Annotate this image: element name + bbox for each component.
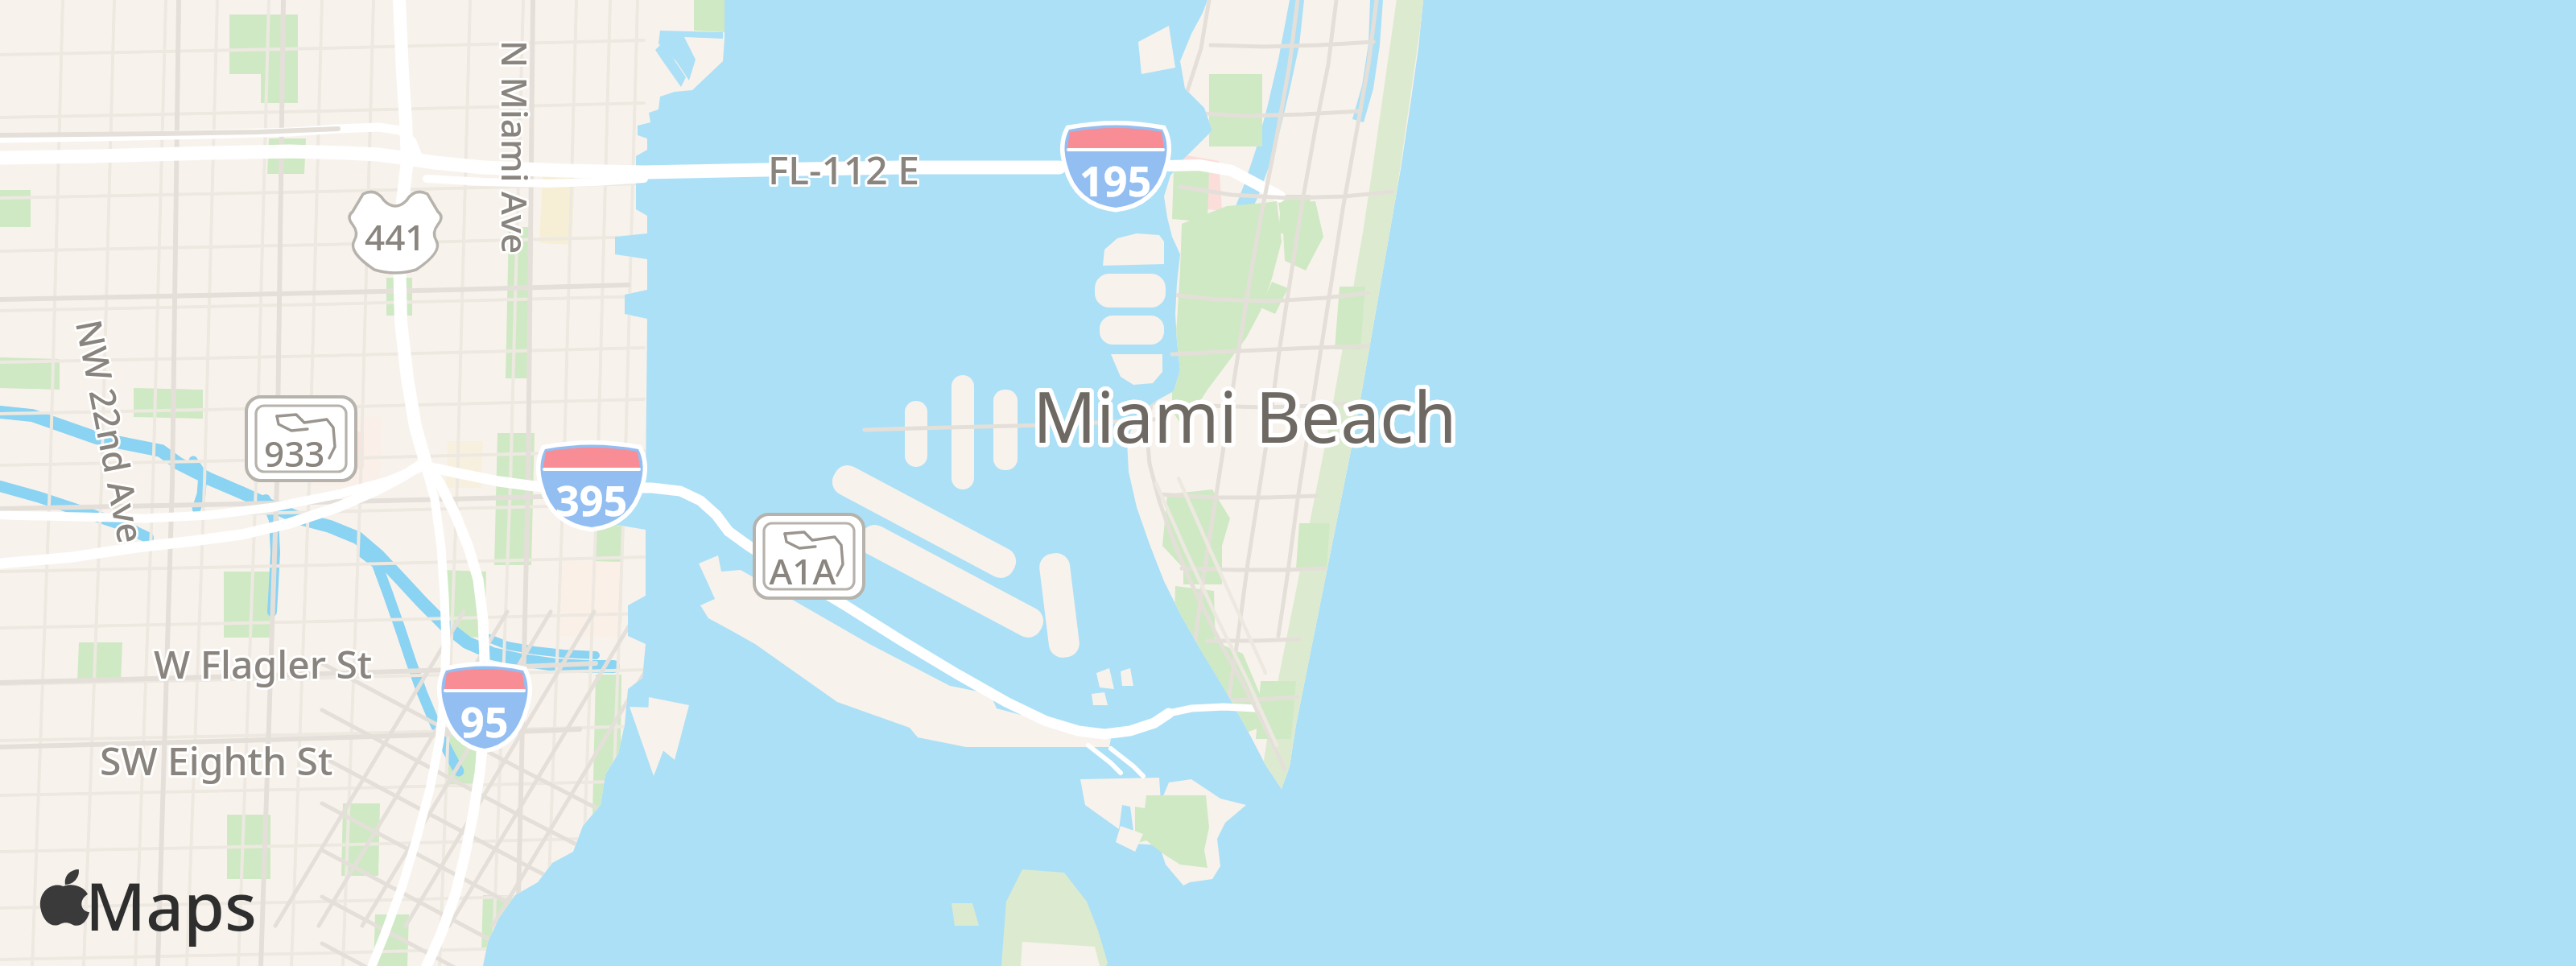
button[interactable] bbox=[0, 0, 2576, 966]
